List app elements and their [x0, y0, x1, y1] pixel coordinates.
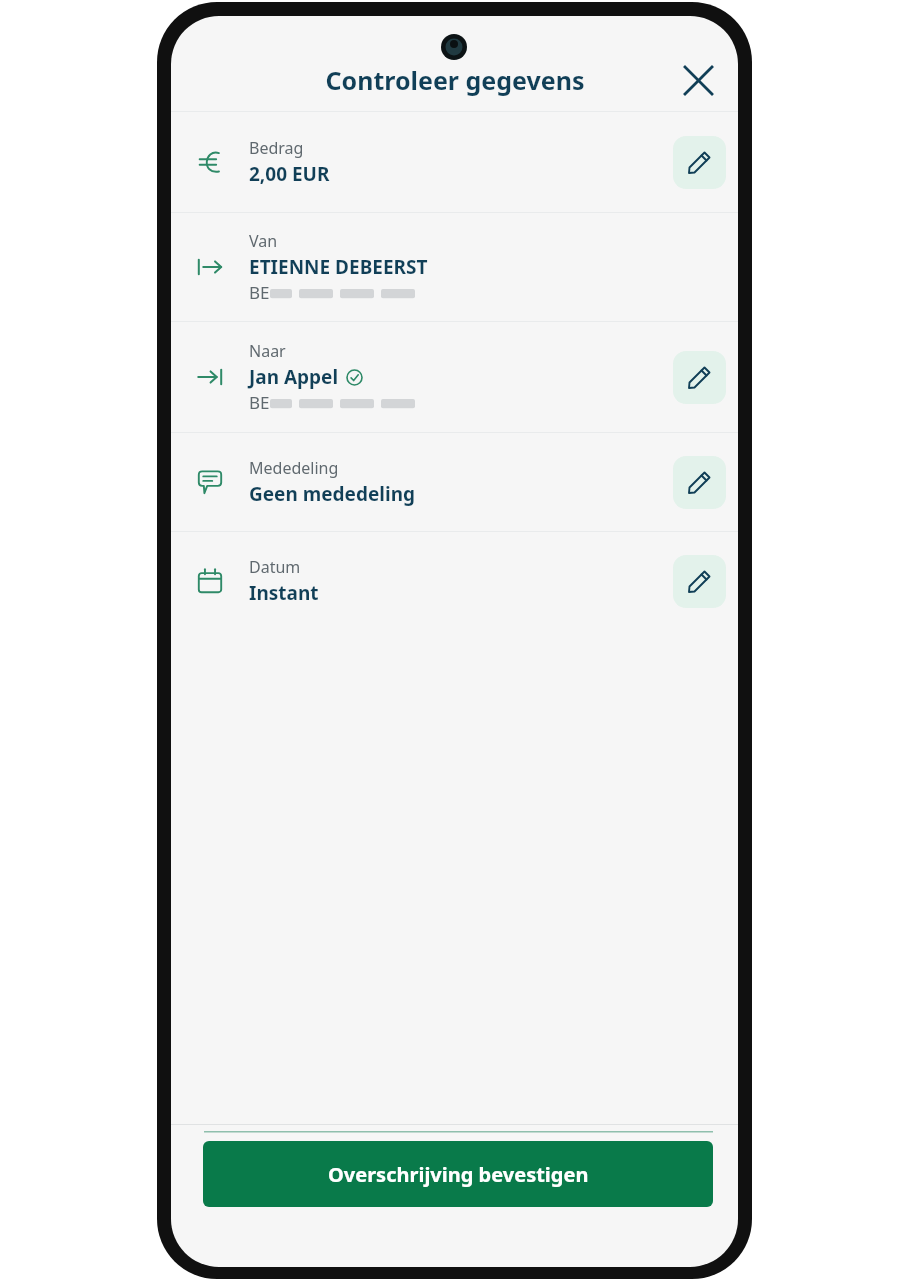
button[interactable]: Bedrag wijzigen	[673, 136, 726, 189]
staticText: 2,00 EUR	[249, 161, 330, 187]
staticText: BE	[249, 391, 270, 414]
staticText: Instant	[249, 580, 319, 606]
button[interactable]: Begunstigde wijzigen	[673, 351, 726, 404]
staticText: Geen mededeling	[249, 481, 416, 507]
staticText: BE	[249, 281, 270, 304]
staticText: ETIENNE DEBEERST	[249, 254, 428, 280]
staticText: Van	[249, 230, 278, 252]
button[interactable]: Sluiten	[673, 55, 723, 105]
button[interactable]: Mededeling wijzigen	[673, 456, 726, 509]
staticText: Datum	[249, 556, 301, 578]
button[interactable]: Mededeling	[171, 433, 738, 531]
button[interactable]: Overschrijving bevestigen	[203, 1141, 713, 1207]
staticText: Naar	[249, 340, 286, 362]
button[interactable]: Datum	[171, 532, 738, 630]
staticText: Jan Appel	[249, 364, 339, 390]
staticText: Mededeling	[249, 457, 339, 479]
staticText: Bedrag	[249, 137, 304, 159]
staticText: Overschrijving bevestigen	[328, 1161, 589, 1188]
button[interactable]: Datum wijzigen	[673, 555, 726, 608]
button[interactable]: Naar	[171, 322, 738, 432]
button[interactable]: Bedrag	[171, 112, 738, 212]
staticText: Controleer gegevens	[325, 63, 585, 97]
button[interactable]: Van	[171, 213, 738, 321]
